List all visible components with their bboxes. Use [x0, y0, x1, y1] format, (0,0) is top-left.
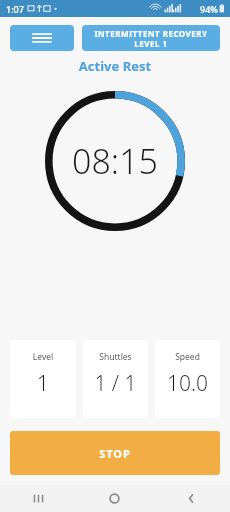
button[interactable]: Shuttles — [83, 340, 148, 418]
button[interactable]: INTERMITTENT RECOVERY LEVEL 1 — [82, 25, 220, 51]
staticText: 1 — [10, 369, 76, 398]
staticText: Active Rest — [0, 57, 230, 75]
staticText: Speed — [155, 351, 220, 363]
button[interactable]: Speed — [155, 340, 220, 418]
button[interactable]: Open menu — [10, 25, 74, 51]
staticText: 10.0 — [155, 369, 220, 398]
staticText: 1 / 1 — [83, 369, 148, 398]
button[interactable]: Recent apps — [0, 485, 76, 512]
staticText: 1:07 — [6, 3, 24, 15]
button[interactable]: Home — [76, 485, 153, 512]
staticText: STOP — [10, 446, 220, 461]
staticText: Level — [10, 351, 76, 363]
staticText: INTERMITTENT RECOVERY LEVEL 1 — [82, 28, 220, 49]
button[interactable]: Level — [10, 340, 76, 418]
staticText: Shuttles — [83, 351, 148, 363]
button[interactable]: Back — [153, 485, 230, 512]
staticText: 94% — [200, 3, 218, 15]
staticText: 08:15 — [45, 138, 185, 184]
button[interactable]: STOP — [10, 431, 220, 475]
